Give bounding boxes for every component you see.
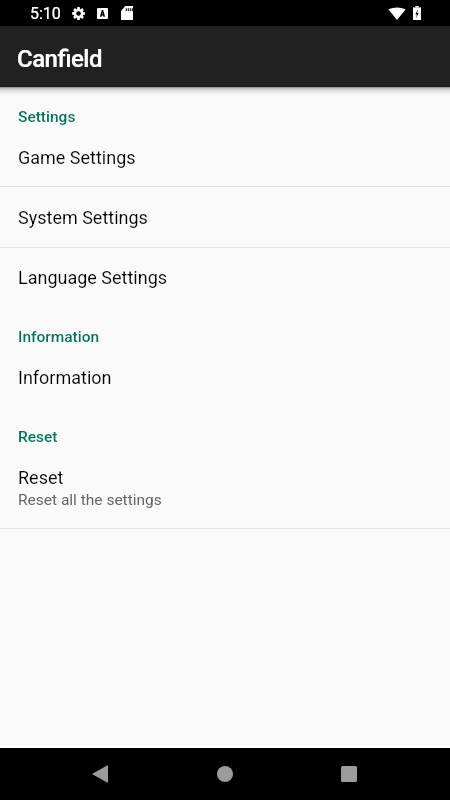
- staticText: Game Settings: [18, 147, 136, 168]
- button[interactable]: Recent apps: [317, 748, 381, 800]
- staticText: Canfield: [17, 45, 102, 73]
- staticText: Reset: [18, 428, 58, 446]
- staticText: System Settings: [18, 207, 148, 228]
- staticText: Language Settings: [18, 267, 168, 288]
- button[interactable]: Home: [193, 748, 257, 800]
- button[interactable]: Back: [68, 748, 132, 800]
- button[interactable]: Game Settings: [0, 127, 450, 187]
- staticText: 5:10: [30, 4, 61, 23]
- staticText: Settings: [18, 108, 76, 126]
- button[interactable]: System Settings: [0, 187, 450, 247]
- staticText: Reset: [18, 467, 64, 488]
- button[interactable]: Language Settings: [0, 248, 450, 307]
- button[interactable]: Reset: [0, 446, 450, 528]
- button[interactable]: Information: [0, 347, 450, 407]
- staticText: Reset all the settings: [18, 491, 162, 509]
- staticText: Information: [18, 328, 100, 346]
- staticText: Information: [18, 367, 112, 388]
